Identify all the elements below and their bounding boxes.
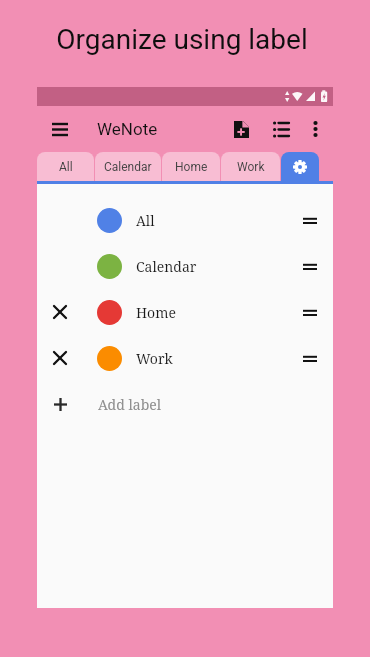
staticText: Calendar — [104, 160, 152, 174]
button[interactable]: Delete Work — [45, 343, 75, 373]
button[interactable]: Calendar — [37, 243, 333, 289]
staticText: Add label — [98, 395, 162, 414]
button[interactable]: Add label — [37, 381, 333, 427]
button[interactable]: Reorder Calendar — [293, 249, 327, 283]
button[interactable]: Settings — [281, 152, 319, 181]
button[interactable]: Home — [162, 152, 220, 181]
button[interactable]: All — [37, 152, 94, 181]
button[interactable]: Work — [221, 152, 280, 181]
staticText: All — [59, 160, 73, 174]
staticText: All — [136, 211, 155, 230]
button[interactable]: More options — [299, 109, 331, 149]
button[interactable]: Delete Home — [37, 289, 333, 335]
button[interactable]: List view — [261, 109, 300, 149]
staticText: WeNote — [97, 119, 158, 139]
button[interactable]: All — [37, 197, 333, 243]
button[interactable]: New note — [224, 109, 258, 149]
staticText: Calendar — [136, 257, 197, 276]
staticText: Work — [237, 160, 265, 174]
button[interactable]: Reorder Home — [293, 295, 327, 329]
staticText: Organize using label — [56, 23, 308, 56]
button[interactable]: Open navigation drawer — [40, 111, 80, 147]
button[interactable]: Delete Home — [45, 297, 75, 327]
button[interactable]: Calendar — [95, 152, 161, 181]
staticText: Work — [136, 349, 173, 368]
button[interactable]: Reorder All — [293, 203, 327, 237]
staticText: Home — [136, 303, 176, 322]
staticText: Home — [175, 160, 208, 174]
button[interactable]: Delete Work — [37, 335, 333, 381]
button[interactable]: Reorder Work — [293, 341, 327, 375]
